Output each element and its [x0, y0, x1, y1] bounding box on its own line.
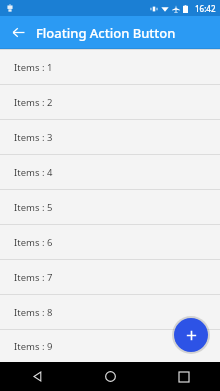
staticText: Items : 4 [14, 166, 53, 179]
button[interactable]: Items : 9 [0, 330, 220, 362]
button[interactable]: Home [74, 362, 147, 391]
button[interactable]: Back [0, 16, 36, 49]
button[interactable]: Items : 7 [0, 260, 220, 294]
button[interactable]: Items : 5 [0, 190, 220, 224]
staticText: Items : 9 [14, 340, 53, 353]
staticText: Floating Action Button [36, 24, 176, 42]
staticText: Items : 3 [14, 131, 53, 144]
staticText: Items : 8 [14, 306, 53, 319]
button[interactable]: Items : 6 [0, 225, 220, 259]
staticText: Items : 5 [14, 201, 53, 214]
button[interactable]: Items : 3 [0, 120, 220, 154]
staticText: Items : 1 [14, 61, 53, 74]
button[interactable]: Recent apps [147, 362, 220, 391]
staticText: Items : 6 [14, 236, 53, 249]
button[interactable]: Items : 4 [0, 155, 220, 189]
staticText: 16:42 [195, 3, 216, 14]
staticText: Items : 7 [14, 271, 53, 284]
button[interactable]: Add [174, 318, 208, 352]
staticText: Items : 2 [14, 96, 53, 109]
button[interactable]: Items : 8 [0, 295, 220, 329]
button[interactable]: Items : 2 [0, 85, 220, 119]
button[interactable]: Items : 1 [0, 50, 220, 84]
button[interactable]: Back [0, 362, 74, 391]
